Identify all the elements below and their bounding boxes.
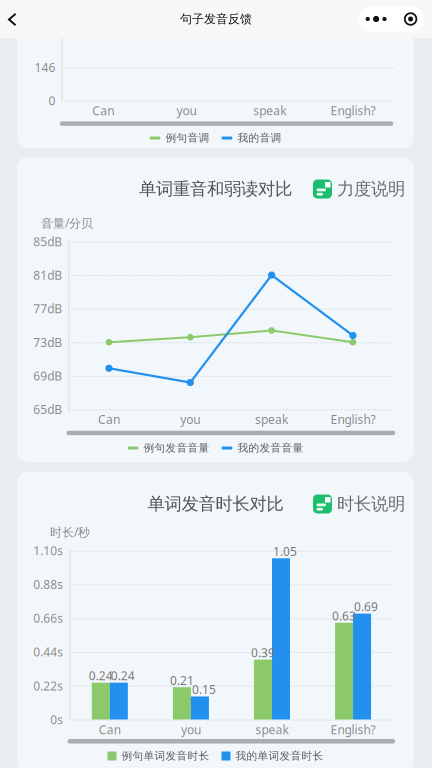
staticText: 0.15: [192, 681, 216, 697]
staticText: 我的单词发音时长: [235, 749, 323, 762]
staticText: 我的发音音量: [237, 441, 303, 454]
staticText: 力度说明: [337, 178, 405, 200]
staticText: 1.10s: [33, 543, 63, 558]
staticText: English?: [330, 411, 375, 427]
staticText: 0.88s: [33, 576, 63, 592]
staticText: Can: [92, 103, 114, 119]
staticText: you: [180, 411, 200, 427]
staticText: 69dB: [33, 368, 62, 384]
staticText: 0.63: [332, 608, 356, 624]
staticText: 0.24: [89, 668, 113, 684]
staticText: 0.22s: [33, 678, 63, 694]
staticText: 0.21: [170, 672, 194, 688]
button[interactable]: 力度说明: [312, 176, 406, 202]
staticText: English?: [331, 721, 376, 737]
staticText: 0.69: [354, 599, 378, 614]
staticText: 句子发音反馈: [180, 12, 252, 26]
staticText: 例句单词发音时长: [121, 749, 209, 762]
staticText: 77dB: [33, 301, 62, 317]
staticText: 81dB: [33, 267, 62, 283]
staticText: 音量/分贝: [41, 215, 93, 231]
staticText: 例句发音音量: [143, 441, 209, 454]
staticText: speak: [253, 103, 286, 119]
staticText: 73dB: [33, 334, 62, 350]
staticText: 0.39: [251, 645, 275, 660]
staticText: Can: [98, 411, 120, 427]
staticText: 0.44s: [33, 644, 63, 660]
staticText: 146: [35, 59, 56, 75]
staticText: 1.05: [273, 543, 297, 559]
staticText: speak: [255, 411, 288, 427]
staticText: 0.24: [111, 668, 135, 684]
button[interactable]: 时长说明: [312, 491, 406, 517]
staticText: Can: [99, 721, 121, 737]
staticText: 0s: [50, 711, 63, 727]
staticText: 单词发音时长对比: [147, 493, 283, 515]
staticText: you: [181, 721, 201, 737]
button[interactable]: More options: [358, 6, 424, 31]
staticText: 时长/秒: [50, 524, 90, 540]
button[interactable]: Back: [0, 0, 31, 38]
staticText: 单词重音和弱读对比: [139, 178, 292, 200]
staticText: English?: [331, 103, 376, 119]
staticText: 例句音调: [165, 131, 209, 144]
staticText: 0.66s: [33, 610, 63, 626]
staticText: 0: [49, 93, 56, 109]
staticText: 85dB: [33, 233, 62, 249]
staticText: you: [176, 103, 196, 119]
staticText: 65dB: [33, 401, 62, 417]
staticText: 我的音调: [237, 131, 281, 144]
staticText: 时长说明: [337, 493, 405, 515]
staticText: speak: [255, 721, 288, 737]
